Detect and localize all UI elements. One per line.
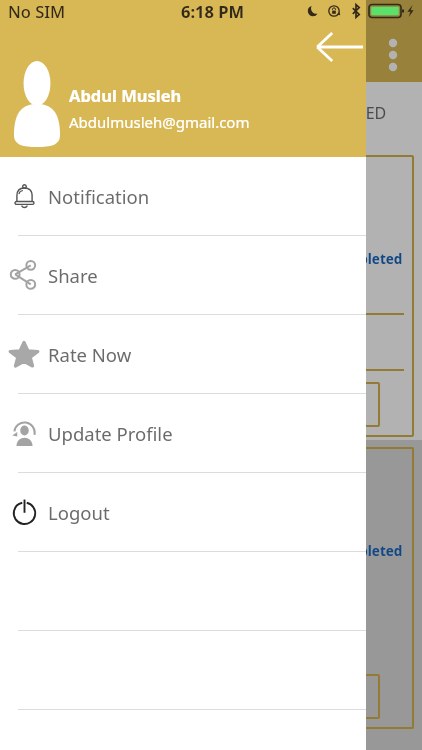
button[interactable] xyxy=(0,631,366,710)
button[interactable]: Share xyxy=(0,236,366,315)
staticText: Completed xyxy=(329,250,403,268)
button[interactable]: ONGOING xyxy=(64,102,143,124)
button[interactable] xyxy=(300,674,380,719)
staticText: Completed xyxy=(329,542,403,560)
button[interactable] xyxy=(0,552,366,631)
button[interactable]: Logout xyxy=(0,473,366,552)
button[interactable]: Completed xyxy=(10,155,414,437)
button[interactable]: Back xyxy=(316,28,366,66)
staticText: Abdulmusleh@gmail.com xyxy=(69,112,250,132)
staticText: Rate Now xyxy=(48,342,132,367)
button[interactable]: More options xyxy=(378,40,408,70)
button[interactable]: Completed xyxy=(10,447,414,729)
staticText: ONGOING xyxy=(64,102,143,124)
button[interactable]: COMPLETED xyxy=(293,102,387,124)
staticText: COMPLETED xyxy=(293,102,387,124)
staticText: Logout xyxy=(48,500,110,525)
staticText: 6:18 PM xyxy=(181,0,245,22)
staticText: Abdul Musleh xyxy=(69,84,182,106)
staticText: Notification xyxy=(48,184,150,209)
staticText: No SIM xyxy=(8,0,66,22)
button[interactable]: Notification xyxy=(0,157,366,236)
button[interactable]: Update Profile xyxy=(0,394,366,473)
staticText: Update Profile xyxy=(48,421,173,446)
staticText: Share xyxy=(48,263,98,288)
button[interactable]: Rate Now xyxy=(0,315,366,394)
button[interactable] xyxy=(300,382,380,427)
